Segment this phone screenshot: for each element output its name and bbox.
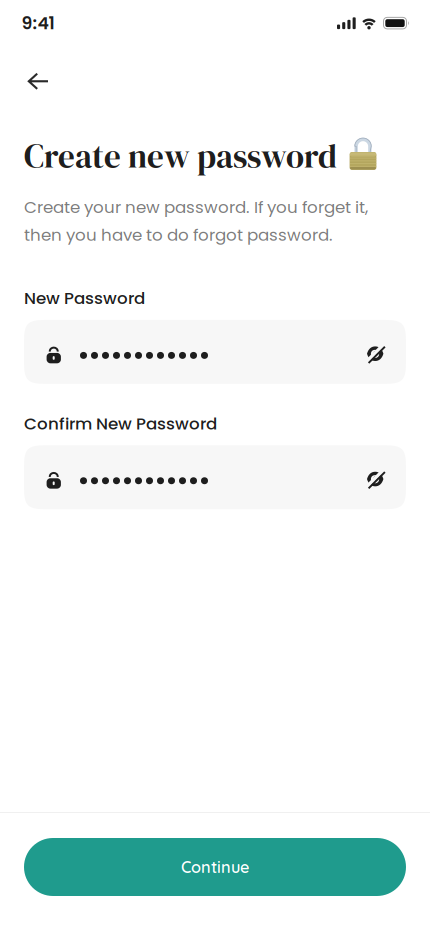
staticText: Create new password	[24, 133, 337, 178]
button[interactable]: Continue	[24, 838, 406, 896]
staticText: 9:41	[21, 11, 54, 35]
staticText: Create your new password. If you forget …	[24, 195, 368, 247]
button[interactable]: New Password	[24, 320, 406, 384]
button[interactable]: Show password	[366, 468, 406, 486]
staticText: Confirm New Password	[24, 412, 217, 435]
staticText: New Password	[24, 287, 145, 310]
button[interactable]: Confirm New Password	[24, 445, 406, 509]
button[interactable]: Back	[0, 35, 48, 89]
staticText: Continue	[181, 857, 249, 877]
button[interactable]: Show password	[366, 343, 406, 361]
